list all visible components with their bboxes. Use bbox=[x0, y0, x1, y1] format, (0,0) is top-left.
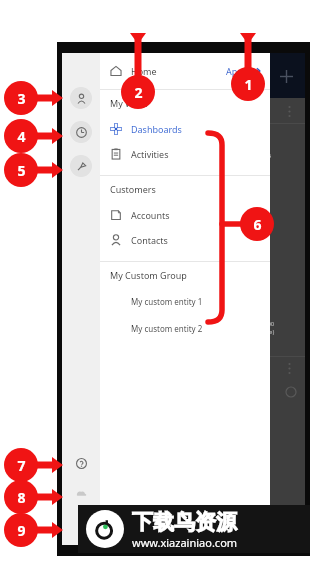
staticText: Activities bbox=[131, 148, 169, 160]
staticText: 86 bbox=[264, 152, 271, 160]
button[interactable]: Help bbox=[71, 453, 91, 473]
staticText: 下载鸟资源 bbox=[132, 509, 237, 535]
staticText: Customers bbox=[110, 183, 156, 195]
staticText: 2 bbox=[134, 83, 143, 102]
button[interactable]: Dashboards bbox=[100, 116, 270, 141]
button[interactable]: Pinned bbox=[70, 155, 92, 177]
staticText: 8 bbox=[17, 488, 26, 507]
button[interactable]: Accounts bbox=[100, 202, 270, 227]
staticText: My Work bbox=[110, 97, 148, 109]
staticText: Dashboards bbox=[131, 123, 182, 135]
staticText: 4 bbox=[17, 127, 26, 146]
staticText: www.xiazainiao.com bbox=[132, 535, 238, 550]
button[interactable]: Activities bbox=[100, 141, 270, 166]
staticText: 100 bbox=[264, 320, 275, 328]
staticText: Contacts bbox=[131, 234, 168, 246]
staticText: Home bbox=[131, 65, 157, 77]
staticText: 1 bbox=[244, 75, 253, 94]
staticText: My custom entity 1 bbox=[131, 296, 203, 307]
staticText: My custom entity 2 bbox=[131, 323, 203, 334]
staticText: 6 bbox=[253, 215, 262, 234]
staticText: My Custom Group bbox=[110, 269, 187, 281]
button[interactable]: My custom entity 1 bbox=[100, 288, 270, 315]
staticText: 7 bbox=[17, 456, 26, 475]
button[interactable]: Search bbox=[247, 63, 273, 89]
staticText: 3 bbox=[17, 89, 26, 108]
button[interactable]: New record bbox=[273, 63, 299, 89]
staticText: Apps bbox=[226, 65, 248, 77]
button[interactable]: Profile bbox=[70, 87, 92, 109]
button[interactable]: Apps bbox=[217, 53, 270, 89]
button[interactable]: My custom entity 2 bbox=[100, 315, 270, 342]
button[interactable]: Contacts bbox=[100, 227, 270, 252]
button[interactable]: Home bbox=[100, 53, 217, 89]
staticText: 9 bbox=[17, 521, 26, 540]
staticText: e) bbox=[269, 328, 275, 336]
staticText: Accounts bbox=[131, 209, 170, 221]
button[interactable]: Offline status bbox=[71, 483, 91, 503]
staticText: 5 bbox=[17, 161, 26, 180]
button[interactable]: Recent bbox=[70, 121, 92, 143]
